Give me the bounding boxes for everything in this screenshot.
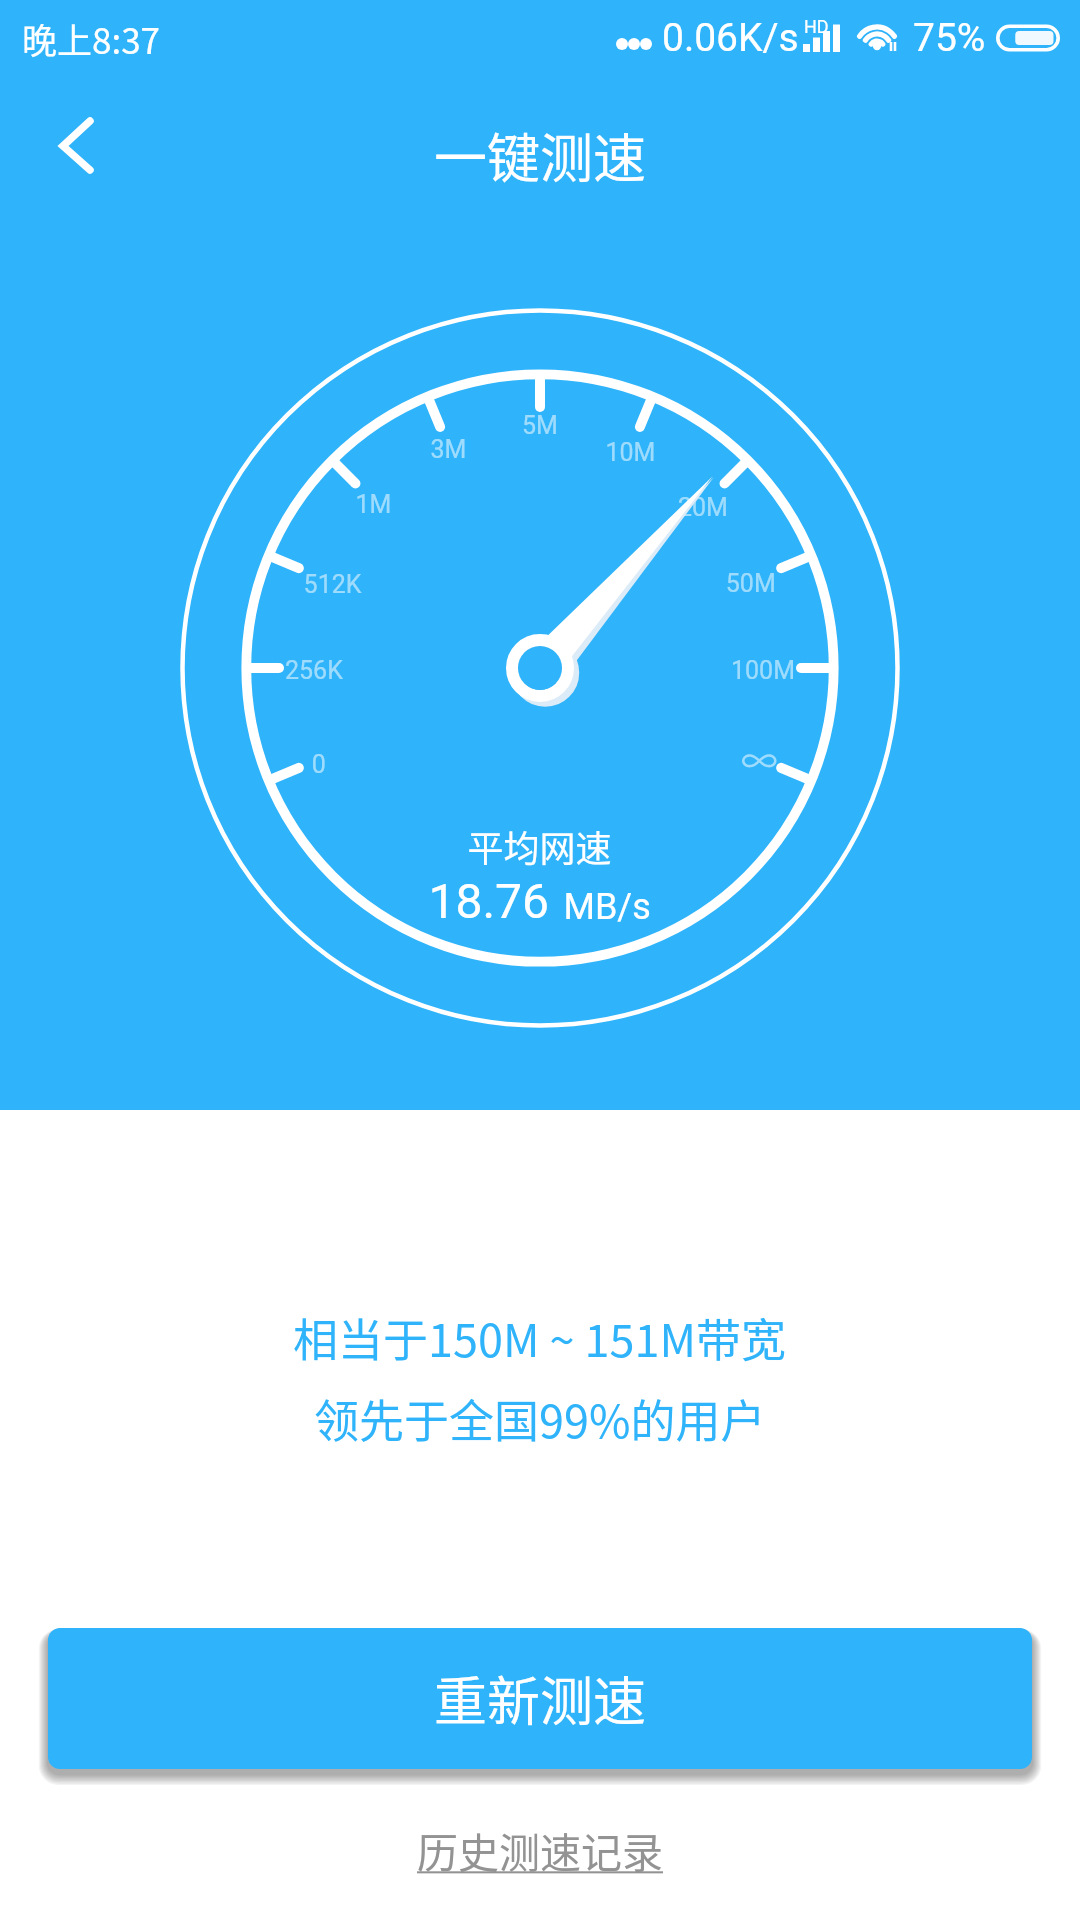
- staticText: 75%: [913, 15, 986, 61]
- button[interactable]: 重新测速: [48, 1628, 1032, 1769]
- button[interactable]: Back: [30, 104, 118, 192]
- button[interactable]: 历史测速记录: [399, 1814, 681, 1885]
- staticText: 0.06K/s: [662, 15, 799, 61]
- staticText: 领先于全国99%的用户: [314, 1386, 766, 1451]
- staticText: 晚上8:37: [22, 13, 161, 64]
- staticText: HD: [804, 16, 829, 37]
- staticText: 重新测速: [434, 1660, 646, 1737]
- staticText: 一键测速: [434, 117, 646, 194]
- staticText: 历史测速记录: [417, 1820, 663, 1879]
- staticText: 相当于150M ~ 151M带宽: [293, 1305, 787, 1370]
